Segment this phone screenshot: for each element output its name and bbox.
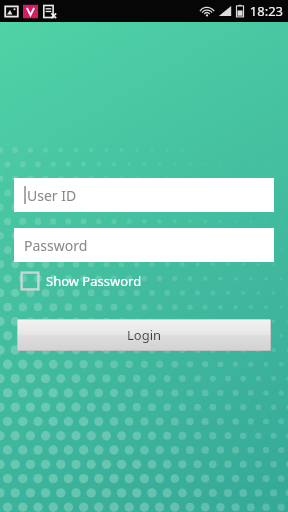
button[interactable]: User ID: [14, 178, 274, 212]
staticText: 18:23: [249, 2, 283, 20]
button[interactable]: Show Password: [20, 266, 150, 296]
staticText: Show Password: [46, 272, 142, 290]
staticText: Password: [24, 236, 88, 255]
button[interactable]: Password: [14, 228, 274, 262]
staticText: Login: [127, 326, 162, 344]
staticText: User ID: [27, 186, 77, 205]
button[interactable]: Login: [17, 319, 271, 351]
